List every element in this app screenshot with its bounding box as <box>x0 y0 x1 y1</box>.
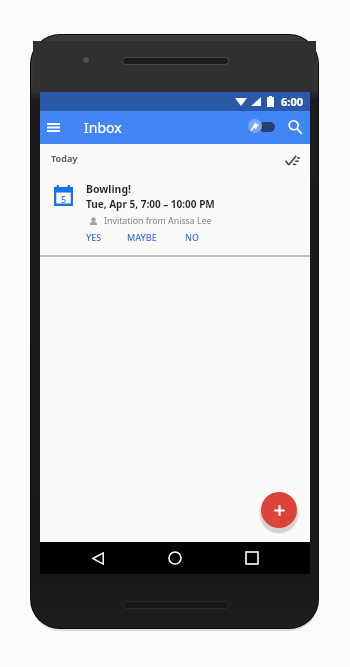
button[interactable]: Pin inbox toggle <box>243 113 279 141</box>
button[interactable]: Compose new message <box>261 492 297 528</box>
button[interactable]: Home <box>159 542 191 574</box>
staticText: Tue, Apr 5, 7:00 – 10:00 PM <box>86 197 215 211</box>
staticText: Invitation from Anissa Lee <box>104 215 212 227</box>
staticText: NO <box>185 231 200 243</box>
button[interactable]: Sweep all done <box>281 149 303 171</box>
button[interactable]: YES <box>86 231 102 243</box>
staticText: Bowling! <box>86 182 132 196</box>
button[interactable]: 5 <box>40 166 310 256</box>
staticText: 5 <box>61 193 67 205</box>
button[interactable]: Search <box>281 113 309 141</box>
staticText: YES <box>86 231 102 243</box>
staticText: Inbox <box>84 118 122 137</box>
staticText: Today <box>51 152 78 164</box>
button[interactable]: NO <box>185 231 200 243</box>
button[interactable]: Back <box>83 542 115 574</box>
button[interactable]: Recent apps <box>236 542 268 574</box>
staticText: 6:00 <box>281 94 303 109</box>
button[interactable]: MAYBE <box>127 231 157 243</box>
staticText: MAYBE <box>127 231 157 243</box>
button[interactable]: Open navigation menu <box>40 114 67 141</box>
